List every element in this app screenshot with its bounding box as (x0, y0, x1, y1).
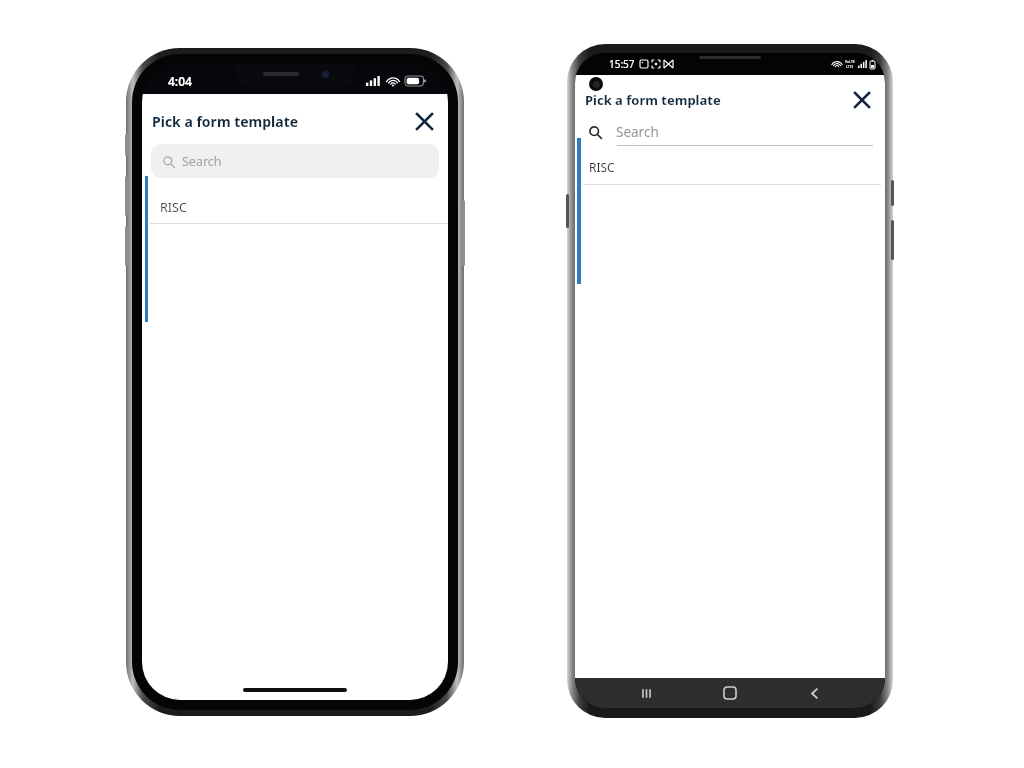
button[interactable]: Recents (633, 680, 659, 706)
button[interactable]: Home (717, 680, 743, 706)
staticText: 4:04 (168, 73, 192, 89)
button[interactable]: Close (410, 107, 438, 135)
button[interactable]: Back (801, 680, 827, 706)
staticText: RISC (160, 199, 187, 216)
staticText: 15:57 (609, 57, 635, 71)
staticText: VoLTE (845, 59, 855, 64)
staticText: Search (616, 123, 659, 141)
staticText: Search (182, 153, 222, 170)
button[interactable]: Close (849, 87, 875, 113)
staticText: RISC (589, 159, 615, 175)
staticText: Pick a form template (585, 91, 721, 109)
staticText: Pick a form template (152, 112, 299, 131)
button[interactable]: RISC (142, 191, 448, 223)
staticText: LTE1 (846, 64, 854, 69)
button[interactable]: Search (589, 119, 873, 145)
button[interactable]: Search (151, 144, 439, 178)
button[interactable]: RISC (575, 156, 885, 178)
